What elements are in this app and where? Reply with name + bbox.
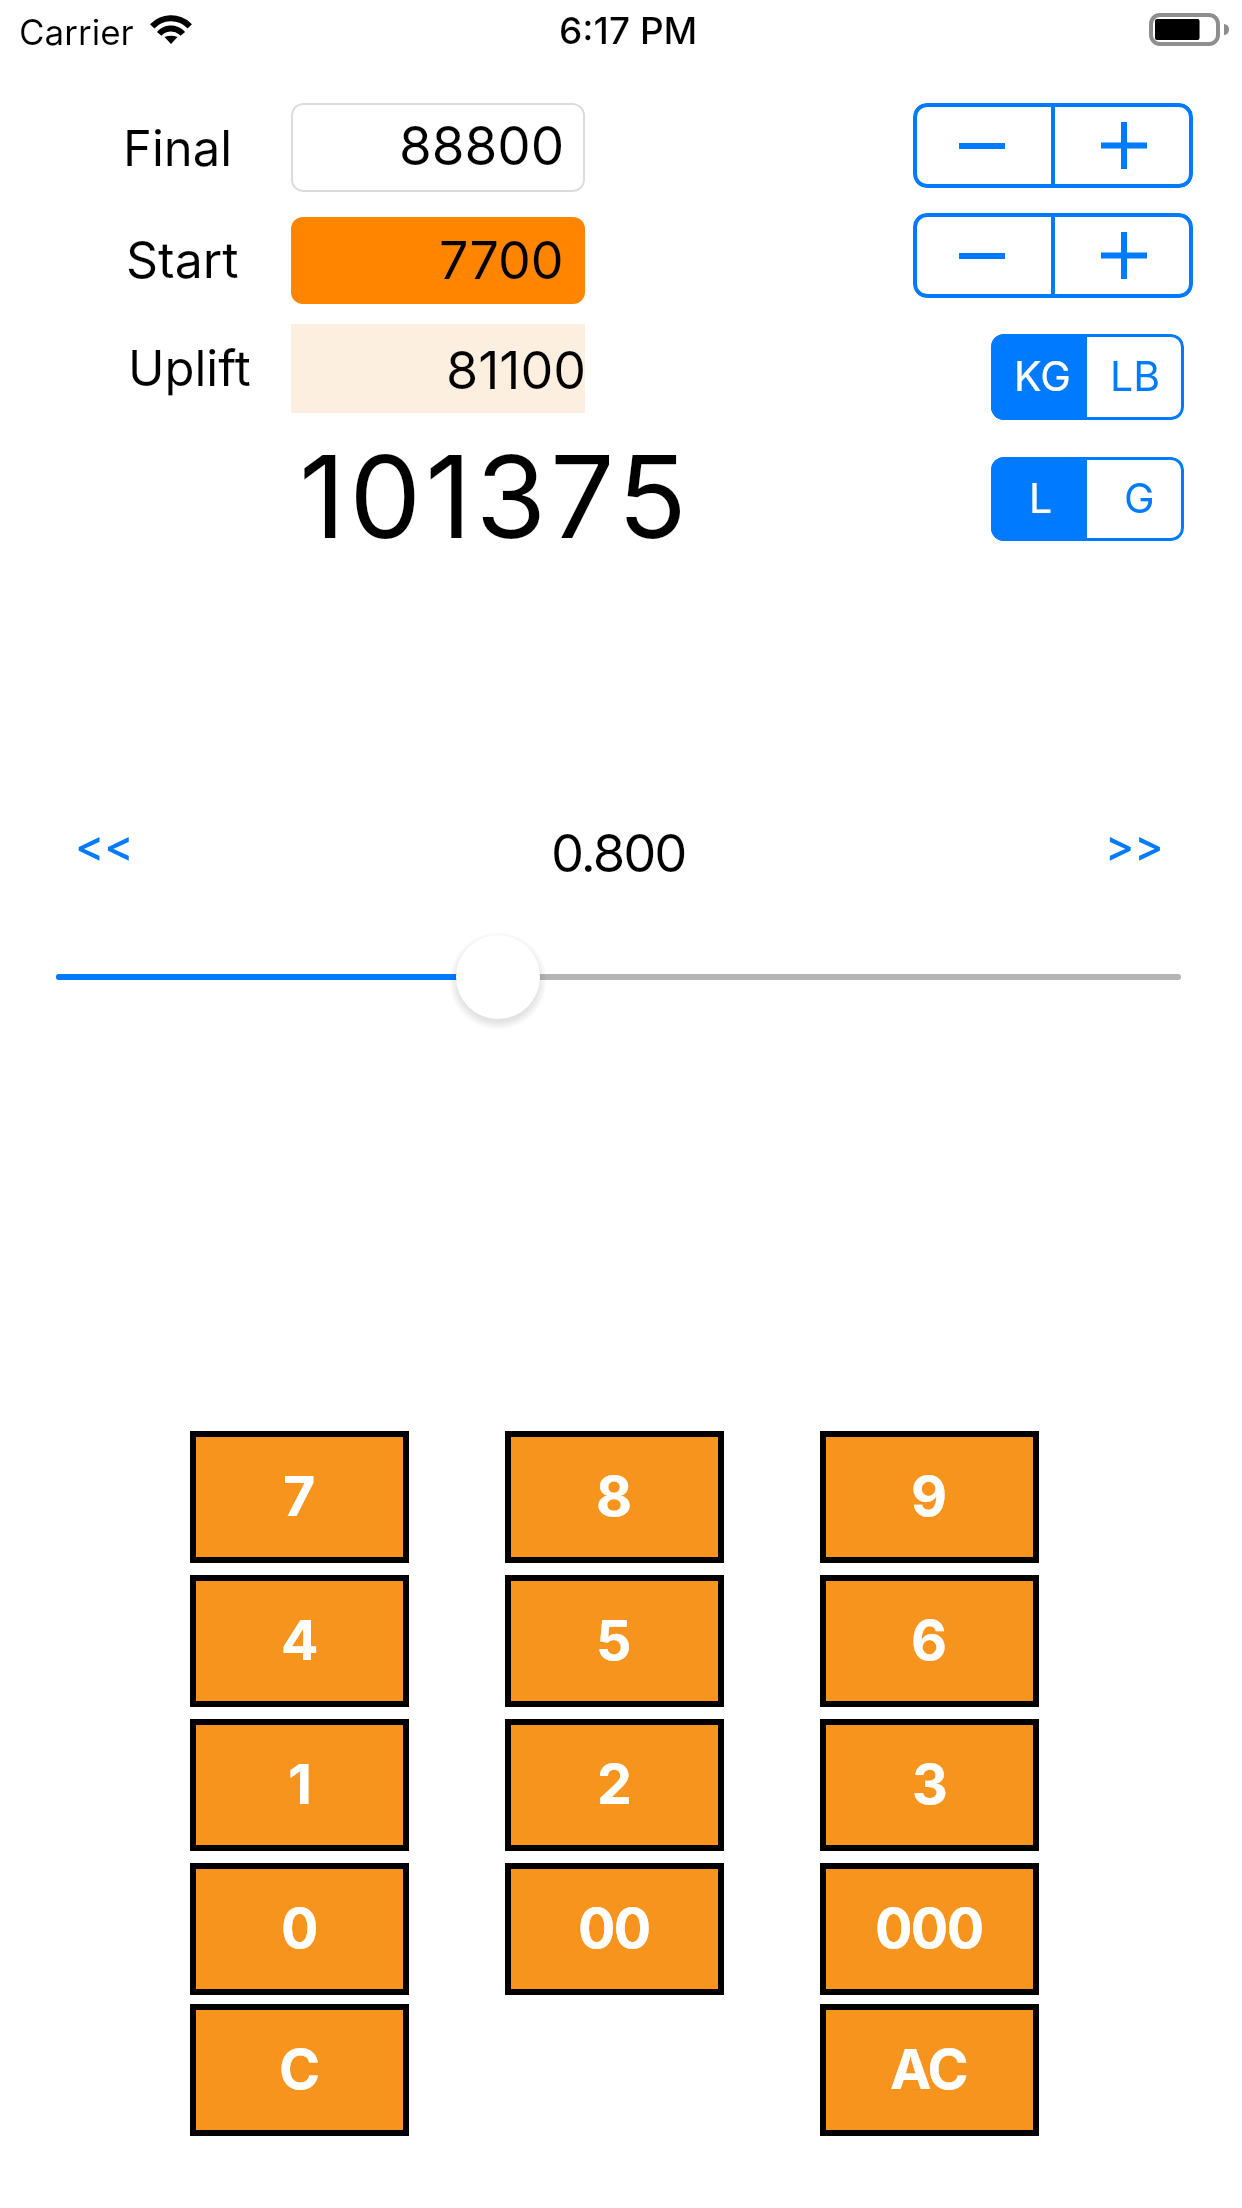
staticText: Start <box>126 230 239 290</box>
button[interactable]: << <box>58 808 148 888</box>
button[interactable]: Decrease <box>913 213 1051 298</box>
staticText: 7700 <box>439 229 564 292</box>
button[interactable]: 9 <box>820 1431 1039 1563</box>
staticText: 7 <box>283 1462 314 1529</box>
staticText: C <box>279 2035 319 2102</box>
button[interactable]: 5 <box>505 1575 724 1707</box>
button[interactable]: 8 <box>505 1431 724 1563</box>
staticText: 1 <box>288 1750 311 1817</box>
staticText: 9 <box>911 1462 946 1529</box>
staticText: 0 <box>281 1894 317 1961</box>
button[interactable]: 88800 <box>291 103 585 192</box>
staticText: KG <box>1014 351 1071 401</box>
staticText: >> <box>1105 818 1164 871</box>
staticText: 4 <box>281 1606 317 1673</box>
button[interactable]: 7 <box>190 1431 409 1563</box>
staticText: 8 <box>596 1462 631 1529</box>
button[interactable]: LB <box>1087 334 1184 420</box>
staticText: 6:17 PM <box>559 8 698 53</box>
staticText: AC <box>890 2035 967 2102</box>
staticText: 3 <box>912 1750 947 1817</box>
button[interactable]: Increase <box>1055 213 1193 298</box>
button[interactable]: 000 <box>820 1863 1039 1995</box>
staticText: 0.800 <box>551 821 686 885</box>
staticText: 000 <box>875 1894 983 1961</box>
staticText: << <box>75 818 134 871</box>
staticText: 5 <box>596 1606 630 1673</box>
staticText: L <box>1029 473 1053 523</box>
staticText: Final <box>123 119 233 178</box>
button[interactable]: L <box>991 457 1087 541</box>
button[interactable]: C <box>190 2004 409 2136</box>
staticText: 2 <box>597 1750 631 1817</box>
button[interactable]: 81100 <box>291 324 585 413</box>
button[interactable]: 3 <box>820 1719 1039 1851</box>
button[interactable]: KG <box>991 334 1087 420</box>
staticText: 00 <box>578 1894 650 1961</box>
button[interactable]: 6 <box>820 1575 1039 1707</box>
staticText: G <box>1124 473 1155 523</box>
button[interactable]: G <box>1087 457 1184 541</box>
button[interactable]: 4 <box>190 1575 409 1707</box>
staticText: Uplift <box>128 339 251 398</box>
staticText: 6 <box>911 1606 946 1673</box>
button[interactable]: Adjust value <box>40 930 1200 1024</box>
button[interactable]: 0 <box>190 1863 409 1995</box>
staticText: 101375 <box>299 428 691 566</box>
button[interactable]: AC <box>820 2004 1039 2136</box>
button[interactable]: Increase <box>1055 103 1193 188</box>
staticText: 81100 <box>446 339 587 402</box>
button[interactable]: 2 <box>505 1719 724 1851</box>
button[interactable]: 00 <box>505 1863 724 1995</box>
staticText: Carrier <box>19 11 134 53</box>
staticText: LB <box>1110 351 1161 401</box>
staticText: 88800 <box>399 114 565 178</box>
button[interactable]: 1 <box>190 1719 409 1851</box>
button[interactable]: Decrease <box>913 103 1051 188</box>
button[interactable]: >> <box>1090 808 1180 888</box>
button[interactable]: 7700 <box>291 217 585 304</box>
